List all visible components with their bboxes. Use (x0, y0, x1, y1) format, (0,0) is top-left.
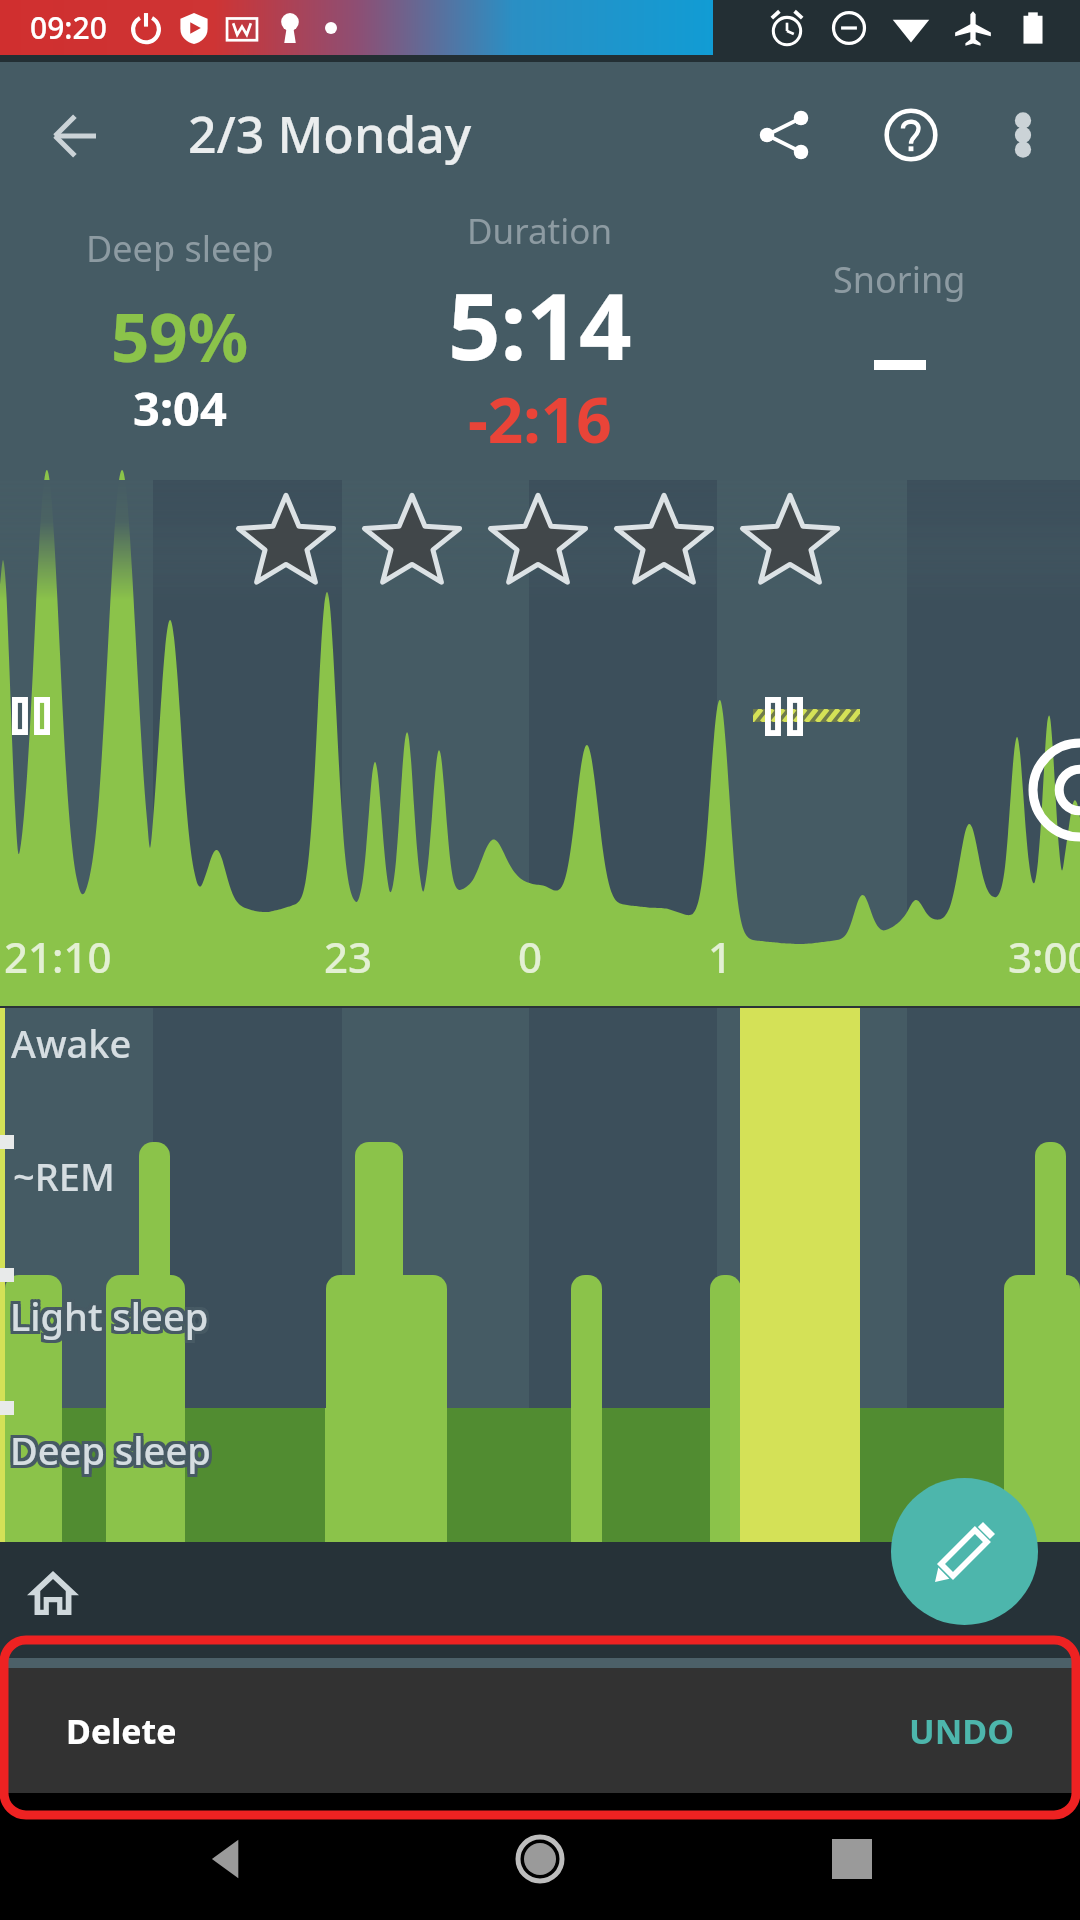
button[interactable]: More options (978, 90, 1068, 180)
staticText: Light sleep (13, 1290, 212, 1342)
staticText: -2:16 (468, 377, 612, 461)
staticText: 59% (111, 290, 249, 381)
staticText: 2/3 Monday (188, 100, 472, 168)
staticText: Light sleep (13, 1293, 212, 1345)
staticText: Deep sleep (13, 1424, 214, 1476)
staticText: 23 (324, 928, 373, 985)
staticText: Light sleep (10, 1290, 209, 1342)
staticText: Light sleep (7, 1290, 206, 1342)
staticText: Deep sleep (10, 1427, 211, 1479)
staticText: 5:14 (448, 262, 632, 387)
button[interactable]: Back (29, 91, 119, 181)
staticText: Light sleep (7, 1293, 206, 1345)
button[interactable]: Home (510, 1829, 570, 1889)
staticText: Light sleep (10, 1293, 209, 1345)
staticText: 1 (708, 928, 733, 985)
staticText: Delete (66, 1708, 177, 1754)
staticText: 0 (518, 928, 543, 985)
staticText: Deep sleep (86, 224, 274, 273)
staticText: Awake (11, 1017, 132, 1069)
staticText: Light sleep (7, 1287, 206, 1339)
staticText: UNDO (909, 1708, 1015, 1754)
staticText: Deep sleep (7, 1421, 208, 1473)
staticText: Deep sleep (10, 1424, 211, 1476)
button[interactable]: Recents (822, 1829, 882, 1889)
staticText: Deep sleep (10, 1421, 211, 1473)
button[interactable]: Edit (891, 1478, 1038, 1625)
staticText: Light sleep (13, 1287, 212, 1339)
button[interactable]: UNDO (889, 1690, 1035, 1772)
staticText: ~REM (13, 1150, 115, 1202)
staticText: Deep sleep (13, 1427, 214, 1479)
staticText: Light sleep (10, 1287, 209, 1339)
staticText: 3:04 (133, 376, 227, 440)
staticText: Snoring (833, 255, 966, 304)
staticText: Duration (467, 207, 613, 255)
button[interactable]: Share (734, 85, 834, 185)
staticText: 09:20 (30, 7, 107, 48)
staticText: Deep sleep (13, 1421, 214, 1473)
button[interactable]: Help (861, 85, 961, 185)
staticText: 3:00 (1008, 928, 1080, 985)
staticText: Deep sleep (7, 1424, 208, 1476)
staticText: Deep sleep (7, 1427, 208, 1479)
button[interactable]: Back (196, 1829, 256, 1889)
staticText: 21:10 (4, 928, 112, 985)
button[interactable]: Home (8, 1548, 98, 1638)
